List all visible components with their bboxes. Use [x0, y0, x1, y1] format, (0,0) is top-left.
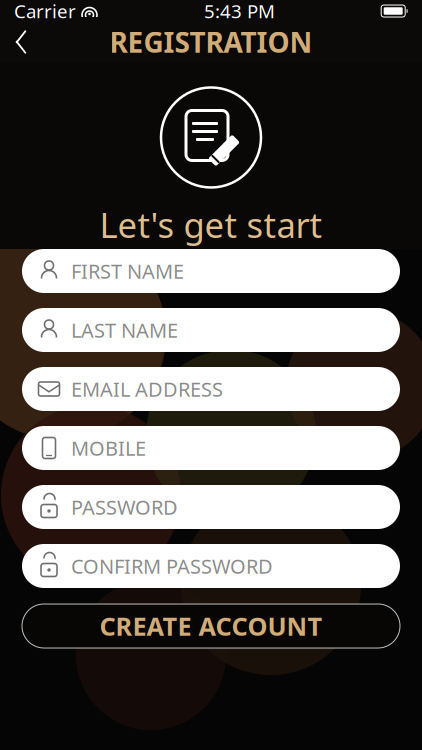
staticText: REGISTRATION	[109, 23, 312, 61]
button[interactable]: EMAIL ADDRESS	[22, 367, 400, 411]
staticText: PASSWORD	[71, 494, 178, 520]
button[interactable]: FIRST NAME	[22, 249, 400, 293]
button[interactable]: Back	[0, 22, 42, 62]
staticText: FIRST NAME	[71, 258, 184, 284]
button[interactable]: LAST NAME	[22, 308, 400, 352]
staticText: EMAIL ADDRESS	[71, 376, 223, 402]
button[interactable]: MOBILE	[22, 426, 400, 470]
staticText: Let's get start	[99, 201, 322, 247]
button[interactable]: CONFIRM PASSWORD	[22, 544, 400, 588]
staticText: CONFIRM PASSWORD	[71, 553, 273, 579]
button[interactable]: CREATE ACCOUNT	[22, 604, 400, 648]
staticText: Carrier	[14, 0, 76, 23]
staticText: 5:43 PM	[204, 0, 275, 23]
staticText: MOBILE	[71, 435, 146, 461]
staticText: CREATE ACCOUNT	[99, 609, 322, 643]
staticText: LAST NAME	[71, 317, 178, 343]
button[interactable]: PASSWORD	[22, 485, 400, 529]
